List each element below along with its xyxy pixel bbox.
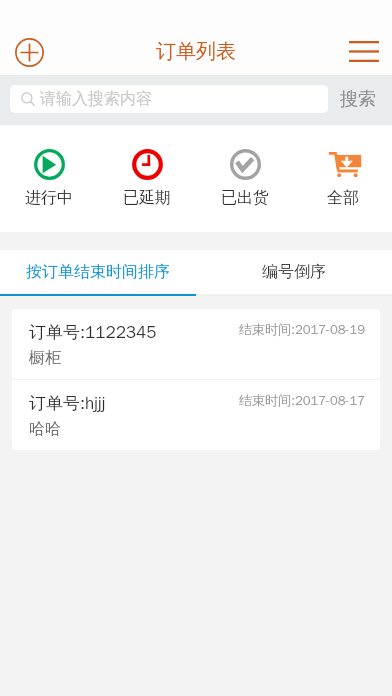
button[interactable]: 进行中 xyxy=(0,125,98,232)
staticText: 结束时间:2017-08-19 xyxy=(239,321,366,337)
staticText: 已延期 xyxy=(123,188,171,208)
staticText: 订单号:hjjj xyxy=(29,393,106,414)
button[interactable]: 全部 xyxy=(294,125,392,232)
staticText: 订单列表 xyxy=(156,39,236,64)
button[interactable]: 已延期 xyxy=(98,125,196,232)
button[interactable]: 已出货 xyxy=(196,125,294,232)
staticText: 哈哈 xyxy=(29,419,61,439)
button[interactable]: 搜索 xyxy=(340,85,376,113)
staticText: 编号倒序 xyxy=(262,262,326,282)
button[interactable]: 按订单结束时间排序 xyxy=(0,250,196,294)
button[interactable]: Add order xyxy=(11,34,47,70)
button[interactable]: Menu xyxy=(343,30,385,72)
button[interactable]: 订单号:hjjj xyxy=(12,380,380,450)
button[interactable]: 订单号:1122345 xyxy=(12,309,380,379)
button[interactable]: 请输入搜索内容 xyxy=(10,85,328,113)
staticText: 结束时间:2017-08-17 xyxy=(239,392,366,408)
staticText: 按订单结束时间排序 xyxy=(26,262,170,282)
staticText: 订单号:1122345 xyxy=(29,322,157,343)
staticText: 请输入搜索内容 xyxy=(40,89,152,109)
button[interactable]: 编号倒序 xyxy=(196,250,392,294)
staticText: 搜索 xyxy=(340,88,376,111)
staticText: 橱柜 xyxy=(29,348,61,368)
staticText: 进行中 xyxy=(25,188,73,208)
staticText: 全部 xyxy=(327,188,359,208)
staticText: 已出货 xyxy=(221,188,269,208)
